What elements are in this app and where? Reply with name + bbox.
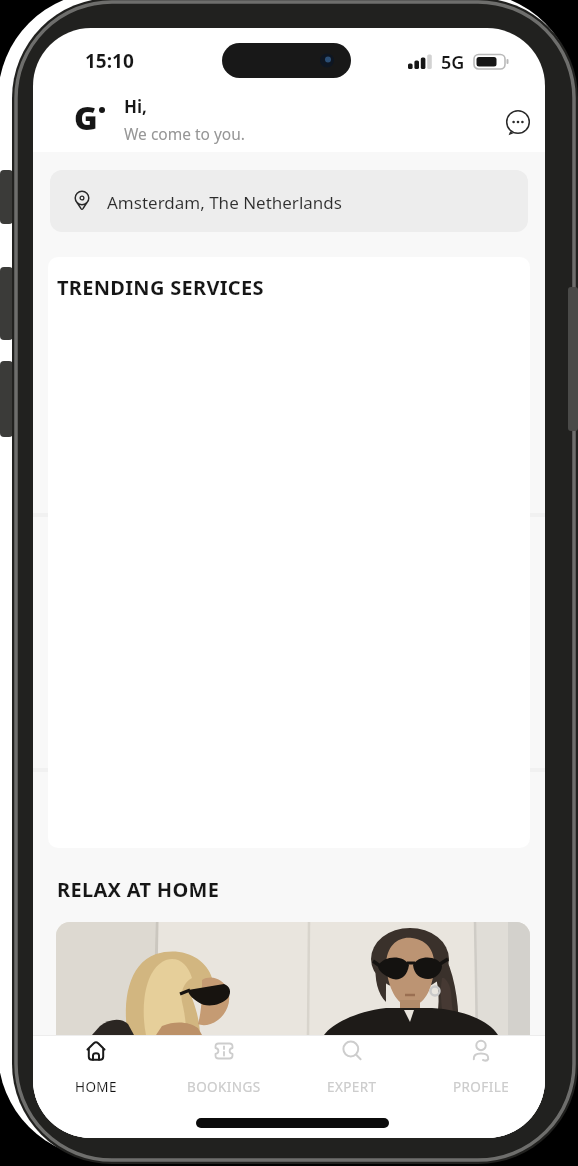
staticText: RELAX AT HOME: [57, 876, 220, 903]
button[interactable]: EXPERT: [312, 1037, 392, 1101]
button[interactable]: [56, 922, 530, 1035]
button[interactable]: Amsterdam, The Netherlands: [50, 170, 528, 232]
staticText: G: [74, 96, 98, 140]
staticText: Amsterdam, The Netherlands: [107, 191, 342, 214]
staticText: TRENDING SERVICES: [57, 274, 264, 301]
button[interactable]: BOOKINGS: [184, 1037, 264, 1101]
staticText: HOME: [75, 1078, 117, 1096]
button[interactable]: PROFILE: [441, 1037, 521, 1101]
staticText: 5G: [441, 50, 465, 75]
staticText: PROFILE: [453, 1078, 510, 1096]
staticText: 15:10: [85, 48, 134, 74]
button[interactable]: HOME: [56, 1037, 136, 1101]
staticText: Hi,: [124, 95, 147, 118]
staticText: We come to you.: [124, 123, 245, 144]
staticText: BOOKINGS: [187, 1078, 261, 1096]
staticText: EXPERT: [327, 1078, 377, 1096]
button[interactable]: [503, 108, 533, 138]
